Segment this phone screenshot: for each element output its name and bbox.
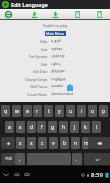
button[interactable]: t <box>44 105 53 117</box>
button[interactable]: ?123 <box>1 153 15 165</box>
button[interactable]: k <box>81 121 90 133</box>
staticText: t <box>48 108 50 115</box>
staticText: e <box>26 108 29 115</box>
button[interactable]: Change Script <box>0 75 110 83</box>
staticText: எழுத்துரு <box>51 77 66 81</box>
staticText: j <box>74 124 76 131</box>
staticText: ?123 <box>5 157 12 161</box>
button[interactable]: Download <box>25 9 43 20</box>
staticText: . <box>76 156 78 163</box>
button[interactable]: Create Noun <box>0 90 110 98</box>
staticText: Edit <box>41 62 48 67</box>
button[interactable]: Backspace <box>88 137 110 149</box>
button[interactable]: Edit <box>0 60 110 68</box>
button[interactable]: h <box>59 121 68 133</box>
button[interactable]: Install <box>46 9 64 20</box>
staticText: f <box>41 124 43 131</box>
staticText: English to தமிழ் <box>43 23 68 28</box>
button[interactable]: Copy <box>90 9 108 20</box>
staticText: u <box>69 108 73 115</box>
button[interactable]: Get System <box>0 52 110 60</box>
button[interactable]: v <box>49 137 58 149</box>
button[interactable]: c <box>38 137 47 149</box>
staticText: m <box>84 140 89 147</box>
button[interactable]: Sort <box>0 45 110 53</box>
button[interactable]: m <box>82 137 91 149</box>
button[interactable]: p <box>99 105 108 117</box>
staticText: r <box>36 108 39 115</box>
staticText: o <box>91 108 95 115</box>
staticText: Shift Focus <box>30 84 48 89</box>
staticText: q <box>4 108 8 115</box>
button[interactable]: , <box>15 153 25 165</box>
staticText: v <box>52 140 55 147</box>
button[interactable]: l <box>92 121 101 133</box>
staticText: கவனம் <box>51 84 63 88</box>
button[interactable]: g <box>48 121 57 133</box>
button[interactable]: r <box>33 105 42 117</box>
staticText: h <box>62 124 66 131</box>
button[interactable]: Shift <box>1 137 15 149</box>
button[interactable]: b <box>60 137 69 149</box>
staticText: , <box>19 156 21 163</box>
staticText: c <box>41 140 44 147</box>
button[interactable]: Help <box>0 37 110 45</box>
staticText: k <box>84 124 87 131</box>
staticText: g <box>51 124 55 131</box>
staticText: Help <box>40 39 48 44</box>
staticText: Edit Language <box>11 1 48 8</box>
staticText: x <box>30 140 33 147</box>
staticText: y <box>58 108 61 115</box>
staticText: வரிசை <box>51 47 63 51</box>
button[interactable]: f <box>37 121 46 133</box>
staticText: 8:59 <box>91 171 103 179</box>
button[interactable]: Shift Focus <box>0 82 110 90</box>
button[interactable]: i <box>77 105 86 117</box>
button[interactable]: Enter <box>84 153 110 165</box>
staticText: பதிப்பு <box>51 62 61 66</box>
staticText: Edit Date <box>33 69 48 74</box>
staticText: உதவி <box>51 39 61 43</box>
button[interactable]: a <box>5 121 14 133</box>
staticText: அகராதி <box>51 54 65 58</box>
staticText: s <box>19 124 22 131</box>
staticText: d <box>30 124 34 131</box>
staticText: திருத்தம் <box>51 69 65 73</box>
button[interactable]: Recents <box>22 166 32 183</box>
button[interactable]: s <box>16 121 25 133</box>
staticText: Get System <box>29 54 48 59</box>
staticText: a <box>8 124 11 131</box>
button[interactable]: Refresh <box>0 9 17 20</box>
button[interactable]: q <box>1 105 10 117</box>
staticText: Main Menu <box>46 31 65 36</box>
staticText: b <box>63 140 67 147</box>
button[interactable]: w <box>12 105 21 117</box>
button[interactable]: Edit Date <box>0 67 110 75</box>
button[interactable]: Back <box>1 166 11 183</box>
staticText: Create Noun <box>27 92 48 97</box>
staticText: p <box>102 108 106 115</box>
button[interactable]: Main Menu <box>46 31 65 36</box>
staticText: z <box>19 140 22 147</box>
button[interactable]: o <box>88 105 97 117</box>
button[interactable]: x <box>27 137 36 149</box>
button[interactable]: . <box>72 153 82 165</box>
button[interactable]: e <box>23 105 32 117</box>
staticText: w <box>15 108 19 115</box>
staticText: i <box>81 108 83 115</box>
button[interactable]: z <box>16 137 25 149</box>
staticText: l <box>96 124 98 131</box>
button[interactable]: Home <box>12 166 22 183</box>
button[interactable]: New file <box>68 9 86 20</box>
button[interactable]: n <box>71 137 80 149</box>
staticText: Change Script <box>25 77 48 82</box>
staticText: சொல்லாக்கம் <box>51 92 74 96</box>
button[interactable]: d <box>27 121 36 133</box>
button[interactable]: u <box>66 105 75 117</box>
staticText: n <box>74 140 78 147</box>
staticText: Sort <box>41 47 48 52</box>
button[interactable]: y <box>55 105 64 117</box>
button[interactable]: j <box>70 121 79 133</box>
